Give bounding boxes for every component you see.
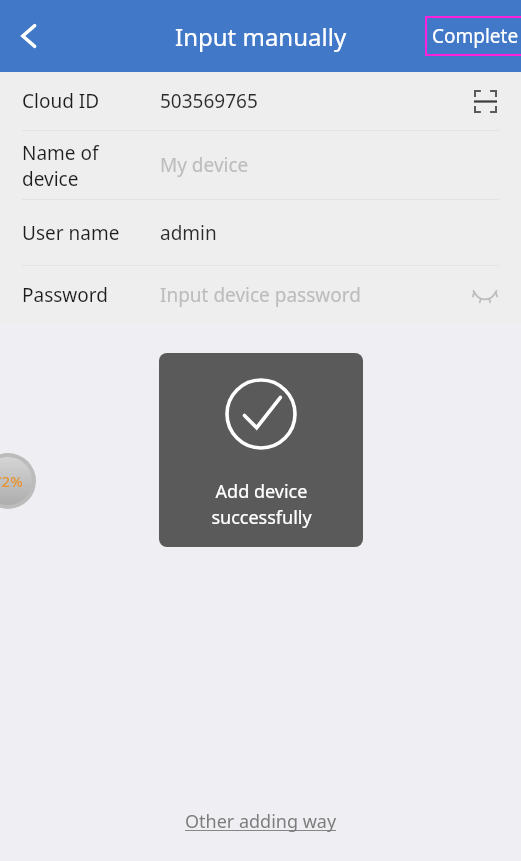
staticText: Complete [432, 23, 519, 49]
staticText: Input device password [160, 282, 465, 308]
button[interactable]: Back [0, 7, 58, 65]
staticText: Add device successfully [211, 479, 312, 529]
staticText: Password [22, 282, 140, 308]
staticText: Cloud ID [22, 88, 140, 114]
button[interactable]: Complete [425, 16, 521, 56]
staticText: 72% [0, 471, 23, 491]
staticText: User name [22, 220, 140, 246]
button[interactable]: Other adding way [175, 805, 347, 838]
staticText: Name of device [22, 140, 140, 191]
button[interactable]: Cloud ID [0, 72, 521, 130]
button[interactable]: Password [0, 266, 521, 324]
staticText: Other adding way [185, 809, 337, 834]
staticText: Input manually [175, 20, 347, 53]
button[interactable]: Show password [465, 275, 505, 315]
staticText: My device [160, 152, 505, 178]
staticText: admin [160, 220, 505, 246]
button[interactable]: Name of device [0, 131, 521, 199]
staticText: 503569765 [160, 88, 465, 114]
button[interactable]: User name [0, 200, 521, 265]
button[interactable]: Scan QR code [465, 81, 505, 121]
